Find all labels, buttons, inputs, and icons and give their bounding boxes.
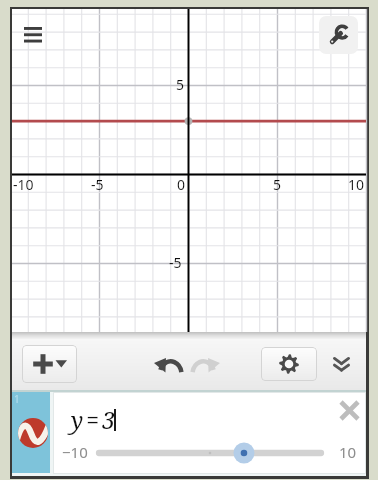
staticText: y = 3 [71,404,114,435]
staticText: −10 [62,442,88,462]
button[interactable]: Delete expression [329,390,369,430]
staticText: 0 [177,175,186,194]
staticText: -5 [169,253,182,272]
staticText: -5 [91,175,104,194]
staticText: 1 [14,392,20,406]
staticText: 10 [348,175,365,194]
button[interactable]: Graph settings [319,16,358,54]
button[interactable]: Add expression [22,345,77,383]
staticText: 5 [176,75,185,94]
button[interactable]: Undo [150,348,184,382]
staticText: 10 [339,442,357,462]
button[interactable]: Collapse keypad [323,347,359,381]
staticText: 5 [273,175,282,194]
staticText: -10 [13,175,34,194]
button[interactable]: Redo [190,348,224,382]
button[interactable]: Expression 1 style [12,392,50,473]
button[interactable]: Menu [16,18,50,50]
button[interactable]: Keyboard settings [261,347,317,381]
